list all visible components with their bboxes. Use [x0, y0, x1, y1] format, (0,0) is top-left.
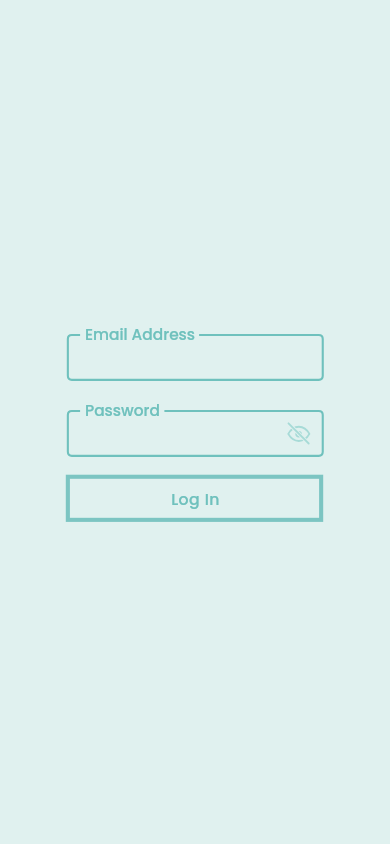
button[interactable]: Password text field: [67, 410, 324, 457]
button[interactable]: Email Address text field: [67, 334, 324, 381]
staticText: Log In: [171, 489, 220, 511]
staticText: Password: [85, 400, 160, 422]
button[interactable]: Toggle password visibility: [283, 418, 315, 450]
button[interactable]: Log In: [66, 475, 323, 522]
staticText: Email Address: [85, 324, 196, 346]
